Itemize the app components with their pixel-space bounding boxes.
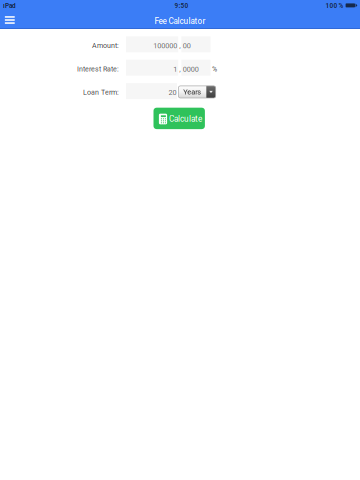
staticText: 9:50 (174, 2, 188, 10)
button[interactable]: Open menu (0, 11, 20, 28)
staticText: iPad (3, 2, 16, 10)
staticText: Loan Term: (83, 88, 119, 97)
staticText: , (179, 65, 180, 73)
staticText: , (179, 41, 180, 50)
staticText: 100 (325, 2, 337, 10)
staticText: % (212, 65, 217, 73)
staticText: 00 (183, 41, 191, 50)
staticText: Calculate (169, 114, 202, 124)
staticText: 100000 (153, 41, 177, 50)
staticText: % (338, 2, 343, 10)
staticText: Years (183, 88, 201, 96)
staticText: 0000 (183, 65, 199, 73)
button[interactable]: Calculate (153, 108, 205, 129)
button[interactable]: Loan term unit (178, 86, 216, 98)
staticText: 1 (173, 65, 177, 73)
staticText: Fee Calculator (154, 16, 205, 26)
staticText: Amount: (92, 41, 119, 50)
staticText: 20 (168, 88, 176, 97)
staticText: Interest Rate: (77, 65, 119, 73)
